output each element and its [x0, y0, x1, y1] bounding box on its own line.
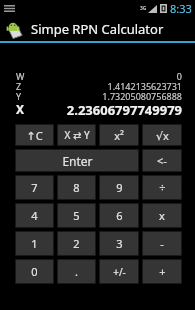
staticText: 6 [116, 208, 123, 223]
button[interactable]: 0 [15, 259, 54, 284]
staticText: 3G [140, 5, 147, 12]
staticText: 1 [31, 236, 38, 251]
button[interactable]: - [142, 231, 182, 256]
button[interactable]: Enter [15, 149, 139, 172]
staticText: Enter [62, 153, 93, 169]
staticText: x² [114, 128, 124, 143]
button[interactable]: 9 [99, 175, 139, 200]
button[interactable]: 8 [57, 175, 96, 200]
button[interactable]: √x [142, 124, 182, 146]
button[interactable]: x [142, 203, 182, 228]
button[interactable]: + [142, 259, 182, 284]
staticText: Simpe RPN Calculator [31, 20, 164, 38]
staticText: 0 [31, 264, 38, 279]
staticText: 4 [31, 208, 38, 223]
staticText: ÷ [159, 180, 166, 195]
staticText: X ⇄ Y [64, 128, 90, 142]
staticText: 8 [73, 180, 80, 195]
button[interactable]: 1 [15, 231, 54, 256]
staticText: 7 [31, 180, 38, 195]
button[interactable]: 4 [15, 203, 54, 228]
staticText: 1.4142135623731 [22, 80, 182, 90]
staticText: 9 [116, 180, 123, 195]
staticText: + [159, 264, 166, 279]
button[interactable]: +/- [99, 259, 139, 284]
staticText: 0 [25, 70, 182, 80]
button[interactable]: 7 [15, 175, 54, 200]
staticText: . [75, 264, 78, 279]
staticText: ↑C [26, 128, 43, 143]
button[interactable]: Backspace [142, 149, 182, 172]
button[interactable]: x² [99, 124, 139, 146]
staticText: Y [16, 90, 22, 100]
button[interactable]: 5 [57, 203, 96, 228]
staticText: 3 [116, 236, 123, 251]
button[interactable]: ÷ [142, 175, 182, 200]
button[interactable]: . [57, 259, 96, 284]
staticText: W [16, 70, 25, 80]
button[interactable]: ↑C [15, 124, 54, 146]
staticText: - [160, 236, 164, 251]
button[interactable]: X ⇄ Y [57, 124, 96, 146]
staticText: 1.73205080756888 [22, 90, 182, 100]
staticText: 2 [73, 236, 80, 251]
staticText: +/- [113, 265, 126, 279]
staticText: <- [157, 153, 167, 168]
staticText: Z [16, 80, 22, 90]
staticText: 2.23606797749979 [25, 101, 182, 115]
button[interactable]: 2 [57, 231, 96, 256]
staticText: x [159, 208, 165, 223]
staticText: X [16, 101, 25, 115]
staticText: 8:33 [170, 1, 192, 16]
other: App icon [5, 19, 25, 39]
staticText: 5 [73, 208, 80, 223]
staticText: √x [156, 128, 169, 143]
button[interactable]: 3 [99, 231, 139, 256]
button[interactable]: 6 [99, 203, 139, 228]
